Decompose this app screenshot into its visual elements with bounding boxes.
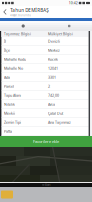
button[interactable]: Sponsor: [1, 190, 13, 198]
staticText: Mahalle No: [4, 66, 23, 71]
staticText: 3301: [48, 75, 56, 80]
staticText: İl: [4, 39, 6, 44]
staticText: Ana Taşınmaz: [48, 120, 71, 125]
button[interactable]: Mülkiyet Bilgisi: [48, 32, 89, 36]
staticText: Favorilere ekle: [33, 139, 59, 144]
staticText: Ada: [4, 75, 10, 80]
staticText: reklam: [42, 183, 50, 187]
staticText: 10:42: [69, 1, 78, 5]
staticText: Pafta: [4, 129, 12, 134]
button[interactable]: Taşınmaz Bilgisi: [4, 32, 48, 36]
staticText: 4 kayıt bulundu: [10, 13, 31, 17]
staticText: Taşınmaz Bilgisi: [4, 32, 31, 36]
staticText: Tapu Alanı: [4, 93, 21, 98]
staticText: 742,00: [48, 93, 59, 98]
staticText: Denizli: [48, 39, 60, 44]
staticText: İlçe: [4, 48, 10, 53]
button[interactable]: Back: [2, 8, 9, 16]
staticText: 2: [48, 84, 50, 89]
staticText: Mülkiyet Bilgisi: [48, 32, 73, 36]
staticText: Mevkii: [4, 111, 15, 116]
button[interactable]: Favorilere ekle: [0, 136, 92, 147]
button[interactable]: Loading: [22, 24, 25, 28]
staticText: Parsel: [4, 84, 14, 89]
staticText: 12041: [48, 66, 58, 71]
staticText: Kocrik: [48, 57, 58, 62]
staticText: Arsa: [48, 102, 55, 107]
staticText: Nitelik: [4, 102, 15, 107]
staticText: Mahalle Kodu: [4, 57, 26, 62]
staticText: Çatal Dut: [48, 111, 63, 116]
staticText: Merkez: [48, 48, 60, 53]
staticText: Zemin Tipi: [4, 120, 21, 125]
staticText: Tahun DEMİRBAŞ: [10, 7, 48, 13]
